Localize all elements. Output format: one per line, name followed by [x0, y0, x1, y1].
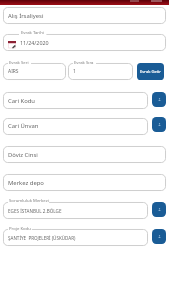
staticText: Cari Ünvan [8, 122, 39, 130]
button[interactable]: Sorumluluk merkezi seç [152, 202, 166, 217]
staticText: 11/24/2020 [20, 39, 49, 46]
button[interactable] [68, 63, 133, 80]
staticText: Evrak Getir [140, 69, 162, 75]
staticText: Evrak Tarihi [21, 29, 44, 35]
staticText: ŞANTİYE PROJELERİ (ÜSKÜDAR) [8, 235, 76, 241]
button[interactable] [3, 34, 166, 51]
staticText: Cari Kodu [8, 97, 35, 105]
staticText: AIRS [8, 68, 19, 75]
button[interactable]: Cari ünvan seç [152, 117, 166, 132]
button[interactable] [3, 146, 166, 163]
button[interactable] [3, 118, 148, 135]
staticText: EGES İSTANBUL 2.BÖLGE [8, 208, 62, 214]
staticText: Merkez depo [8, 179, 44, 187]
button[interactable]: Proje kodu seç [152, 229, 166, 244]
staticText: Evrak Seri [9, 59, 29, 65]
staticText: Evrak Sıra [74, 59, 94, 65]
staticText: Proje Kodu [9, 225, 31, 231]
staticText: Alış İrsaliyesi [8, 12, 44, 20]
button[interactable] [3, 174, 166, 191]
staticText: Sorumluluk Merkezi [9, 197, 49, 203]
button[interactable] [3, 7, 166, 24]
button[interactable] [3, 202, 148, 219]
staticText: Döviz Cinsi [8, 151, 38, 159]
button[interactable]: Evrak Getir [137, 63, 164, 80]
button[interactable]: Cari kodu seç [152, 92, 166, 107]
staticText: 1 [73, 68, 76, 75]
button[interactable] [3, 92, 148, 109]
button[interactable] [3, 63, 66, 80]
button[interactable] [3, 229, 148, 246]
